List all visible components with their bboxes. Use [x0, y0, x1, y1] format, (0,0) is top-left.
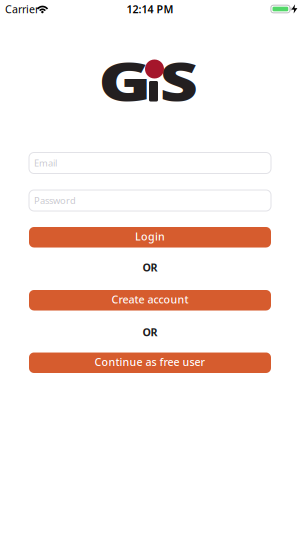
staticText: Email: [34, 157, 57, 169]
button[interactable]: Create account: [0, 290, 300, 310]
staticText: Password: [34, 194, 76, 207]
staticText: OR: [142, 260, 157, 274]
button[interactable]: Password text field: [0, 190, 300, 211]
button[interactable]: Login: [0, 227, 300, 247]
staticText: Carrier: [5, 2, 39, 16]
staticText: Continue as free user: [94, 355, 205, 369]
staticText: S: [163, 45, 194, 116]
staticText: 12:14 PM: [126, 2, 173, 16]
staticText: OR: [142, 325, 157, 339]
staticText: Create account: [111, 292, 188, 306]
staticText: G: [105, 45, 144, 116]
staticText: Login: [135, 229, 165, 243]
button[interactable]: Continue as free user: [0, 352, 300, 373]
button[interactable]: Email text field: [0, 152, 300, 173]
